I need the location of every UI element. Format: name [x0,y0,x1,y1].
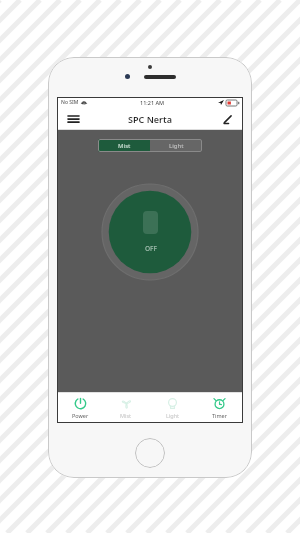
button[interactable]: Power toggle, off [102,184,198,280]
button[interactable]: Mist [98,139,150,152]
staticText: 11:21 AM [140,99,165,106]
staticText: Light [169,142,184,150]
staticText: Timer [212,412,227,419]
button[interactable]: Light [149,392,196,423]
staticText: Power [72,412,89,419]
button[interactable]: Timer [196,392,243,423]
staticText: Mist [118,142,131,150]
staticText: Light [166,412,180,419]
button[interactable]: Home [135,438,165,468]
button[interactable]: Light [150,139,202,152]
button[interactable]: Mist [103,392,149,423]
staticText: SPC Nerta [128,113,172,125]
staticText: Mist [120,412,132,419]
button[interactable]: Menu [63,109,83,129]
staticText: No SIM [61,99,79,106]
button[interactable]: Edit [217,109,237,129]
button[interactable]: Power [57,392,103,423]
staticText: OFF [145,244,157,253]
